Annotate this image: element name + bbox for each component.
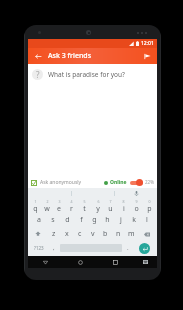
staticText: i <box>123 204 125 213</box>
staticText: f <box>80 215 83 225</box>
button[interactable]: Recent apps <box>98 256 133 268</box>
button[interactable]: Send <box>141 50 153 62</box>
button[interactable]: Shift <box>29 227 47 241</box>
staticText: x <box>65 229 69 239</box>
button[interactable]: Back <box>28 256 63 268</box>
staticText: d <box>65 215 70 225</box>
button[interactable]: ?123 <box>29 241 49 255</box>
button[interactable]: Toggle <box>130 179 143 186</box>
staticText: m <box>128 229 135 239</box>
staticText: r <box>70 204 73 213</box>
staticText: h <box>105 215 110 225</box>
staticText: b <box>103 229 108 239</box>
staticText: l <box>146 215 148 225</box>
staticText: y <box>96 204 100 213</box>
staticText: Online <box>110 179 127 186</box>
button[interactable]: Backspace <box>138 227 156 241</box>
button[interactable]: Online <box>104 179 127 186</box>
button[interactable]: h <box>101 213 114 227</box>
staticText: . <box>127 244 129 252</box>
staticText: t <box>83 204 86 213</box>
staticText: ?123 <box>34 245 44 251</box>
button[interactable]: g <box>88 213 101 227</box>
button[interactable]: 3 <box>53 199 65 213</box>
staticText: 0 <box>148 199 151 204</box>
staticText: Ask anonymously <box>40 179 82 186</box>
staticText: q <box>33 204 38 213</box>
staticText: 3 <box>58 199 61 204</box>
button[interactable]: z <box>47 227 60 241</box>
button[interactable]: x <box>60 227 73 241</box>
staticText: j <box>120 215 122 225</box>
staticText: n <box>116 229 121 239</box>
staticText: w <box>44 204 50 213</box>
staticText: 2 <box>46 199 49 204</box>
staticText: 4 <box>70 199 73 204</box>
button[interactable]: 6 <box>91 199 104 213</box>
button[interactable]: s <box>46 213 60 227</box>
button[interactable]: , <box>49 241 59 255</box>
button[interactable]: 8 <box>117 199 130 213</box>
button[interactable]: 4 <box>65 199 78 213</box>
button[interactable]: 1 <box>29 199 41 213</box>
staticText: 8 <box>122 199 125 204</box>
staticText: 22% <box>145 179 154 185</box>
button[interactable]: j <box>114 213 127 227</box>
button[interactable]: d <box>60 213 74 227</box>
staticText: What is paradise for you? <box>48 70 125 79</box>
button[interactable]: 9 <box>130 199 143 213</box>
staticText: c <box>78 229 82 239</box>
staticText: 9 <box>135 199 138 204</box>
staticText: 1 <box>34 199 37 204</box>
button[interactable]: Enter <box>139 243 150 254</box>
staticText: 6 <box>97 199 100 204</box>
button[interactable]: l <box>140 213 153 227</box>
staticText: Ask 3 friends <box>48 51 92 61</box>
staticText: g <box>92 215 97 225</box>
button[interactable]: n <box>112 227 125 241</box>
staticText: v <box>91 229 95 239</box>
button[interactable]: . <box>123 241 133 255</box>
button[interactable]: 2 <box>41 199 53 213</box>
button[interactable]: 0 <box>143 199 156 213</box>
staticText: 7 <box>109 199 112 204</box>
button[interactable]: m <box>125 227 138 241</box>
staticText: 12:01 <box>141 40 154 47</box>
button[interactable]: v <box>86 227 99 241</box>
button[interactable]: 5 <box>78 199 91 213</box>
button[interactable]: b <box>99 227 112 241</box>
button[interactable]: c <box>73 227 86 241</box>
staticText: , <box>53 244 55 252</box>
button[interactable]: k <box>127 213 140 227</box>
staticText: e <box>57 204 61 213</box>
staticText: 5 <box>83 199 86 204</box>
staticText: k <box>132 215 136 225</box>
staticText: a <box>37 215 41 225</box>
button[interactable]: 7 <box>104 199 117 213</box>
button[interactable]: Ask anonymously <box>31 179 82 186</box>
staticText: u <box>108 204 113 213</box>
button[interactable]: f <box>74 213 88 227</box>
staticText: z <box>52 229 56 239</box>
button[interactable]: a <box>32 213 46 227</box>
staticText: ? <box>36 69 40 80</box>
button[interactable]: Back <box>32 50 44 62</box>
button[interactable]: Switch keyboard <box>133 256 157 268</box>
button[interactable]: Voice input <box>131 188 142 199</box>
staticText: p <box>147 204 152 213</box>
staticText: s <box>51 215 55 225</box>
button[interactable]: Home <box>63 256 98 268</box>
staticText: o <box>134 204 139 213</box>
